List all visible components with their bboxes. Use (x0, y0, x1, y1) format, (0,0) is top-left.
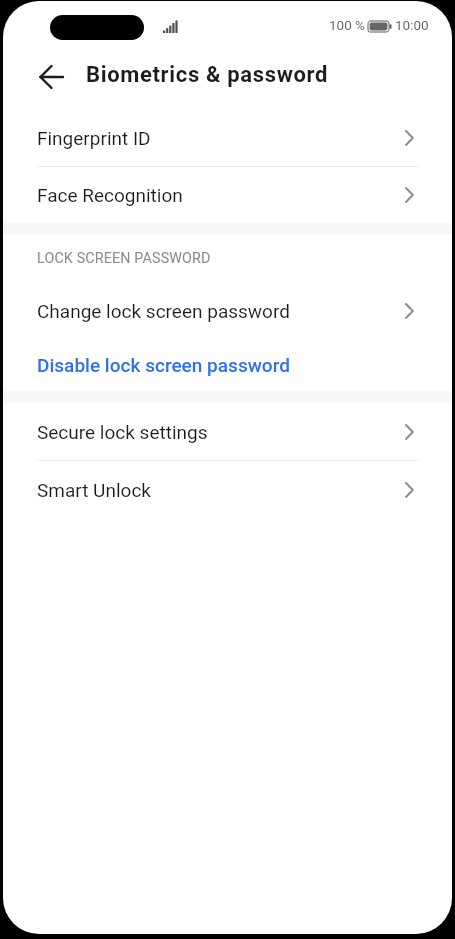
button[interactable] (30, 56, 72, 98)
staticText: Biometrics & password (86, 62, 329, 88)
button[interactable]: Fingerprint ID (3, 110, 452, 166)
staticText: 10:00 (395, 17, 429, 33)
staticText: Change lock screen password (37, 300, 290, 322)
button[interactable]: Change lock screen password (3, 282, 452, 339)
staticText: Fingerprint ID (37, 127, 151, 149)
staticText: Smart Unlock (37, 479, 151, 501)
staticText: Secure lock settings (37, 421, 208, 443)
button[interactable]: Face Recognition (3, 167, 452, 223)
staticText: LOCK SCREEN PASSWORD (37, 250, 211, 267)
staticText: 100 % (329, 17, 365, 33)
button[interactable]: Smart Unlock (3, 461, 452, 518)
button[interactable]: Secure lock settings (3, 403, 452, 460)
button[interactable]: Disable lock screen password (3, 339, 452, 391)
staticText: Disable lock screen password (37, 354, 290, 376)
staticText: Face Recognition (37, 184, 183, 206)
